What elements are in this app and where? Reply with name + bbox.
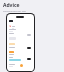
- staticText: Personalised for you: [3, 9, 27, 12]
- button[interactable]: Action: [27, 47, 31, 49]
- button[interactable]: Action: [27, 58, 31, 60]
- staticText: Advice: [3, 2, 20, 9]
- button[interactable]: Add: [20, 64, 23, 67]
- button[interactable]: More: [27, 34, 31, 36]
